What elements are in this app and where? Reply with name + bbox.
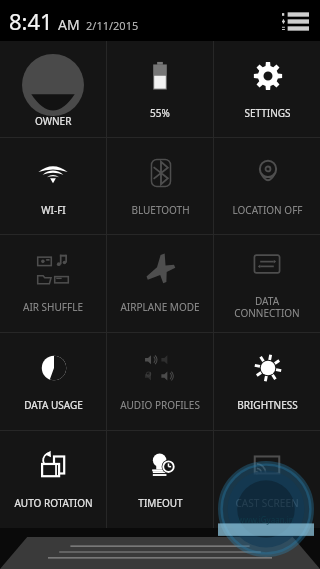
button[interactable]: CAST SCREEN bbox=[214, 431, 320, 528]
button[interactable]: AUTO ROTATION bbox=[0, 431, 106, 528]
staticText: 2/11/2015 bbox=[86, 18, 139, 33]
staticText: OWNER bbox=[35, 114, 72, 128]
button[interactable]: BRIGHTNESS bbox=[214, 333, 320, 430]
staticText: www.iGyaan.in bbox=[238, 514, 294, 525]
button[interactable]: WI-FI bbox=[0, 138, 106, 234]
staticText: DATA USAGE bbox=[24, 398, 83, 412]
staticText: LOCATION OFF bbox=[232, 203, 303, 217]
staticText: AM bbox=[58, 15, 80, 34]
staticText: AUTO ROTATION bbox=[14, 496, 93, 510]
staticText: CAST SCREEN bbox=[235, 496, 299, 510]
button[interactable]: TIMEOUT bbox=[107, 431, 213, 528]
staticText: DATA CONNECTION bbox=[234, 294, 300, 320]
button[interactable]: BLUETOOTH bbox=[107, 138, 213, 234]
staticText: AUDIO PROFILES bbox=[120, 398, 200, 412]
staticText: 55% bbox=[150, 106, 170, 120]
staticText: AIRPLANE MODE bbox=[120, 300, 200, 314]
button[interactable]: DATA CONNECTION bbox=[214, 235, 320, 332]
button[interactable]: LOCATION OFF bbox=[214, 138, 320, 234]
staticText: WI-FI bbox=[41, 203, 66, 217]
button[interactable]: SETTINGS bbox=[214, 41, 320, 137]
staticText: BLUETOOTH bbox=[131, 203, 190, 217]
button[interactable]: OWNER bbox=[0, 41, 106, 137]
button[interactable]: AIR SHUFFLE bbox=[0, 235, 106, 332]
staticText: SETTINGS bbox=[244, 106, 291, 120]
staticText: AIR SHUFFLE bbox=[23, 300, 83, 314]
staticText: 8:41 bbox=[9, 6, 53, 36]
staticText: TIMEOUT bbox=[138, 496, 183, 510]
button[interactable]: AUDIO PROFILES bbox=[107, 333, 213, 430]
staticText: BRIGHTNESS bbox=[237, 398, 298, 412]
button[interactable]: Quick settings list bbox=[277, 3, 313, 39]
button[interactable]: AIRPLANE MODE bbox=[107, 235, 213, 332]
button[interactable]: 55% bbox=[107, 41, 213, 137]
button[interactable]: DATA USAGE bbox=[0, 333, 106, 430]
